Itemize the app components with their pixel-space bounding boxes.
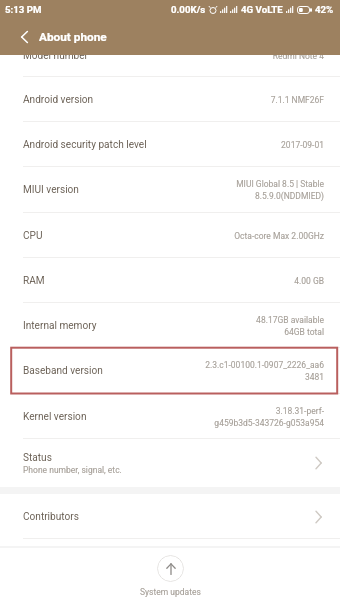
staticText: RAM bbox=[23, 275, 45, 287]
button[interactable]: Android security patch level bbox=[0, 122, 340, 167]
button[interactable]: System updates bbox=[0, 555, 340, 597]
staticText: MIUI Global 8.5 | Stable 8.5.9.0(NDDMIED… bbox=[236, 179, 324, 201]
staticText: Octa-core Max 2.00GHz bbox=[234, 231, 324, 241]
staticText: Android version bbox=[23, 94, 94, 106]
staticText: Android security patch level bbox=[23, 139, 147, 151]
staticText: 5:13 PM bbox=[5, 4, 42, 15]
button[interactable]: Kernel version bbox=[0, 394, 340, 439]
staticText: Phone number, signal, etc. bbox=[23, 465, 122, 475]
button[interactable]: Contributors bbox=[0, 494, 340, 539]
button[interactable]: Baseband version bbox=[0, 348, 340, 394]
staticText: 42% bbox=[315, 4, 334, 15]
staticText: Contributors bbox=[23, 511, 79, 523]
staticText: Kernel version bbox=[23, 411, 87, 423]
staticText: Baseband version bbox=[23, 365, 103, 377]
staticText: MIUI version bbox=[23, 184, 79, 196]
staticText: Internal memory bbox=[23, 320, 97, 332]
staticText: 3.18.31-perf- g459b3d5-343726-g053a954 bbox=[214, 406, 324, 428]
staticText: 0.00K/s bbox=[171, 4, 206, 15]
staticText: 48.17GB available 64GB total bbox=[256, 315, 324, 337]
button[interactable]: MIUI version bbox=[0, 167, 340, 213]
button[interactable]: Android version bbox=[0, 77, 340, 122]
staticText: Redmi Note 4 bbox=[272, 51, 324, 61]
staticText: 7.1.1 NMF26F bbox=[270, 95, 324, 105]
staticText: Status bbox=[23, 452, 52, 464]
button[interactable]: Status bbox=[0, 439, 340, 487]
button[interactable]: RAM bbox=[0, 258, 340, 303]
staticText: 2017-09-01 bbox=[281, 140, 324, 150]
button[interactable]: Back bbox=[14, 27, 34, 47]
staticText: 2.3.c1-00100.1-0907_2226_aa6 3481 bbox=[205, 360, 324, 382]
staticText: Model number bbox=[23, 50, 89, 62]
other: System updates bbox=[157, 555, 184, 582]
button[interactable]: Internal memory bbox=[0, 303, 340, 348]
button[interactable]: CPU bbox=[0, 213, 340, 258]
staticText: CPU bbox=[23, 230, 43, 242]
staticText: 4G VoLTE bbox=[241, 4, 283, 15]
staticText: System updates bbox=[140, 587, 201, 597]
staticText: 4.00 GB bbox=[294, 276, 324, 286]
staticText: About phone bbox=[39, 30, 107, 44]
